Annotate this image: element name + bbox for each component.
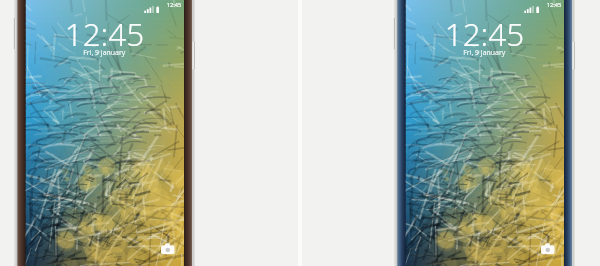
button[interactable]: Galaxy E5 brown, lock screen — [13, 0, 195, 266]
button[interactable]: Galaxy E5 blue, lock screen — [393, 0, 575, 266]
